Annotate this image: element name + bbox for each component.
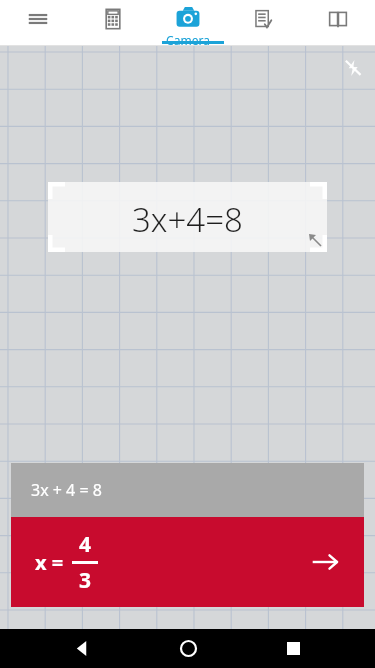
- button[interactable]: Recents: [269, 629, 317, 668]
- staticText: 3x + 4 = 8: [31, 479, 102, 501]
- other: Next: [308, 545, 342, 579]
- staticText: Camera: [166, 32, 210, 46]
- button[interactable]: x =: [11, 517, 364, 607]
- button[interactable]: Camera: [150, 0, 225, 46]
- button[interactable]: Back: [58, 629, 106, 668]
- staticText: 4: [79, 530, 92, 559]
- staticText: 3: [79, 566, 92, 595]
- button[interactable]: Menu: [0, 0, 75, 46]
- button[interactable]: 3x+4=8: [48, 182, 327, 252]
- button[interactable]: Home: [164, 629, 212, 668]
- button[interactable]: Problems: [225, 0, 300, 46]
- button[interactable]: Textbook: [300, 0, 375, 46]
- button[interactable]: Calculator: [75, 0, 150, 46]
- button[interactable]: 3x + 4 = 8: [11, 463, 364, 517]
- button[interactable]: Flash off: [337, 52, 369, 84]
- staticText: 3x+4=8: [132, 197, 243, 242]
- staticText: x =: [35, 549, 64, 576]
